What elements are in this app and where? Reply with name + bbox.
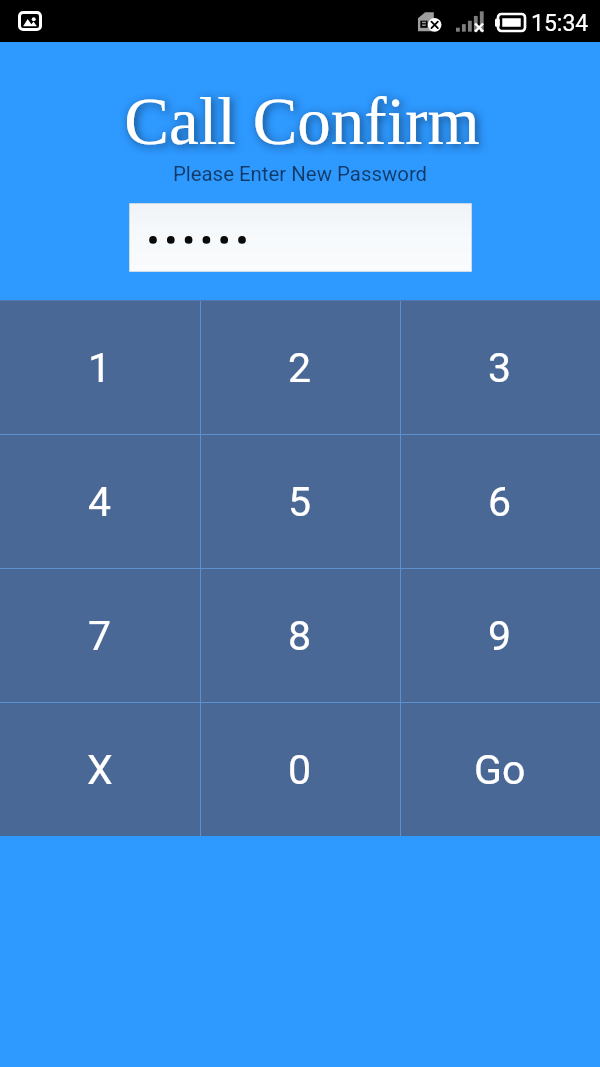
button[interactable]: 2 <box>200 300 400 434</box>
staticText: Call Confirm <box>124 84 480 158</box>
staticText: 1 <box>88 344 112 392</box>
staticText: 0 <box>288 746 312 794</box>
staticText: 8 <box>288 612 312 660</box>
button[interactable]: 3 <box>400 300 600 434</box>
other: No signal <box>456 11 484 32</box>
button[interactable]: 0 <box>200 702 400 836</box>
button[interactable]: 8 <box>200 568 400 702</box>
staticText: X <box>87 746 113 794</box>
staticText: 7 <box>88 612 112 660</box>
button[interactable]: 7 <box>0 568 200 702</box>
staticText: 9 <box>488 612 512 660</box>
button[interactable]: Gallery <box>18 11 42 31</box>
other: Battery <box>495 14 525 31</box>
button[interactable]: X <box>0 702 200 836</box>
staticText: Go <box>474 746 526 794</box>
staticText: Please Enter New Password <box>0 162 600 186</box>
button[interactable]: Go <box>400 702 600 836</box>
staticText: 15:34 <box>531 10 589 37</box>
button[interactable]: 4 <box>0 434 200 568</box>
button[interactable]: 5 <box>200 434 400 568</box>
button[interactable]: 1 <box>0 300 200 434</box>
button[interactable] <box>129 203 472 272</box>
staticText: 4 <box>88 478 112 526</box>
button[interactable]: 6 <box>400 434 600 568</box>
staticText: 6 <box>488 478 512 526</box>
staticText: 2 <box>288 344 312 392</box>
other: No SIM card <box>417 11 441 32</box>
staticText: 5 <box>288 478 312 526</box>
button[interactable]: 9 <box>400 568 600 702</box>
staticText: 3 <box>488 344 512 392</box>
